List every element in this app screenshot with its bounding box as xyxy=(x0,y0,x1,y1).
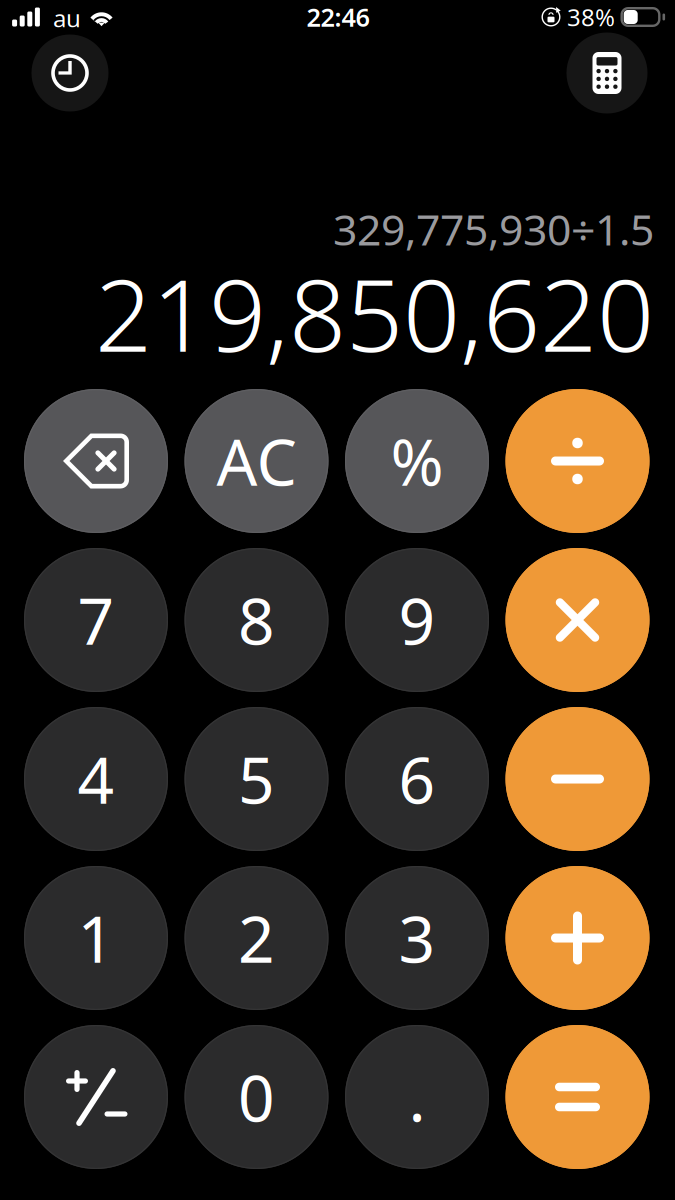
button[interactable]: 0 xyxy=(184,1025,328,1169)
button[interactable]: 1 xyxy=(24,866,168,1010)
button[interactable]: 3 xyxy=(345,866,489,1010)
button[interactable]: Add xyxy=(505,866,649,1010)
button[interactable]: 2 xyxy=(184,866,328,1010)
staticText: 8 xyxy=(238,577,275,662)
button[interactable]: 9 xyxy=(345,548,489,692)
staticText: 219,850,620 xyxy=(95,247,654,379)
staticText: 4 xyxy=(77,736,114,821)
staticText: AC xyxy=(216,418,296,503)
button[interactable]: Multiply xyxy=(505,548,649,692)
staticText: 38% xyxy=(567,1,615,33)
button[interactable]: 4 xyxy=(24,707,168,851)
staticText: au xyxy=(53,2,81,34)
button[interactable]: . xyxy=(345,1025,489,1169)
button[interactable]: 8 xyxy=(184,548,328,692)
staticText: 22:46 xyxy=(306,0,369,34)
staticText: 1 xyxy=(77,895,114,980)
button[interactable]: 5 xyxy=(184,707,328,851)
button[interactable]: AC xyxy=(184,389,328,533)
button[interactable]: Calculator xyxy=(566,32,647,113)
staticText: 5 xyxy=(238,736,275,821)
button[interactable]: Toggle sign xyxy=(24,1025,168,1169)
staticText: 3 xyxy=(398,895,435,980)
staticText: 0 xyxy=(238,1054,275,1139)
button[interactable]: Subtract xyxy=(505,707,649,851)
button[interactable]: % xyxy=(345,389,489,533)
button[interactable]: History xyxy=(31,34,108,111)
staticText: 329,775,930÷1.5 xyxy=(333,201,654,257)
staticText: 6 xyxy=(398,736,435,821)
button[interactable]: Delete xyxy=(24,389,168,533)
button[interactable]: 7 xyxy=(24,548,168,692)
staticText: . xyxy=(408,1054,425,1139)
button[interactable]: Divide xyxy=(505,389,649,533)
staticText: 7 xyxy=(77,577,114,662)
button[interactable]: Equals xyxy=(505,1025,649,1169)
staticText: 2 xyxy=(238,895,275,980)
button[interactable]: 6 xyxy=(345,707,489,851)
staticText: 9 xyxy=(398,577,435,662)
staticText: % xyxy=(390,418,443,503)
